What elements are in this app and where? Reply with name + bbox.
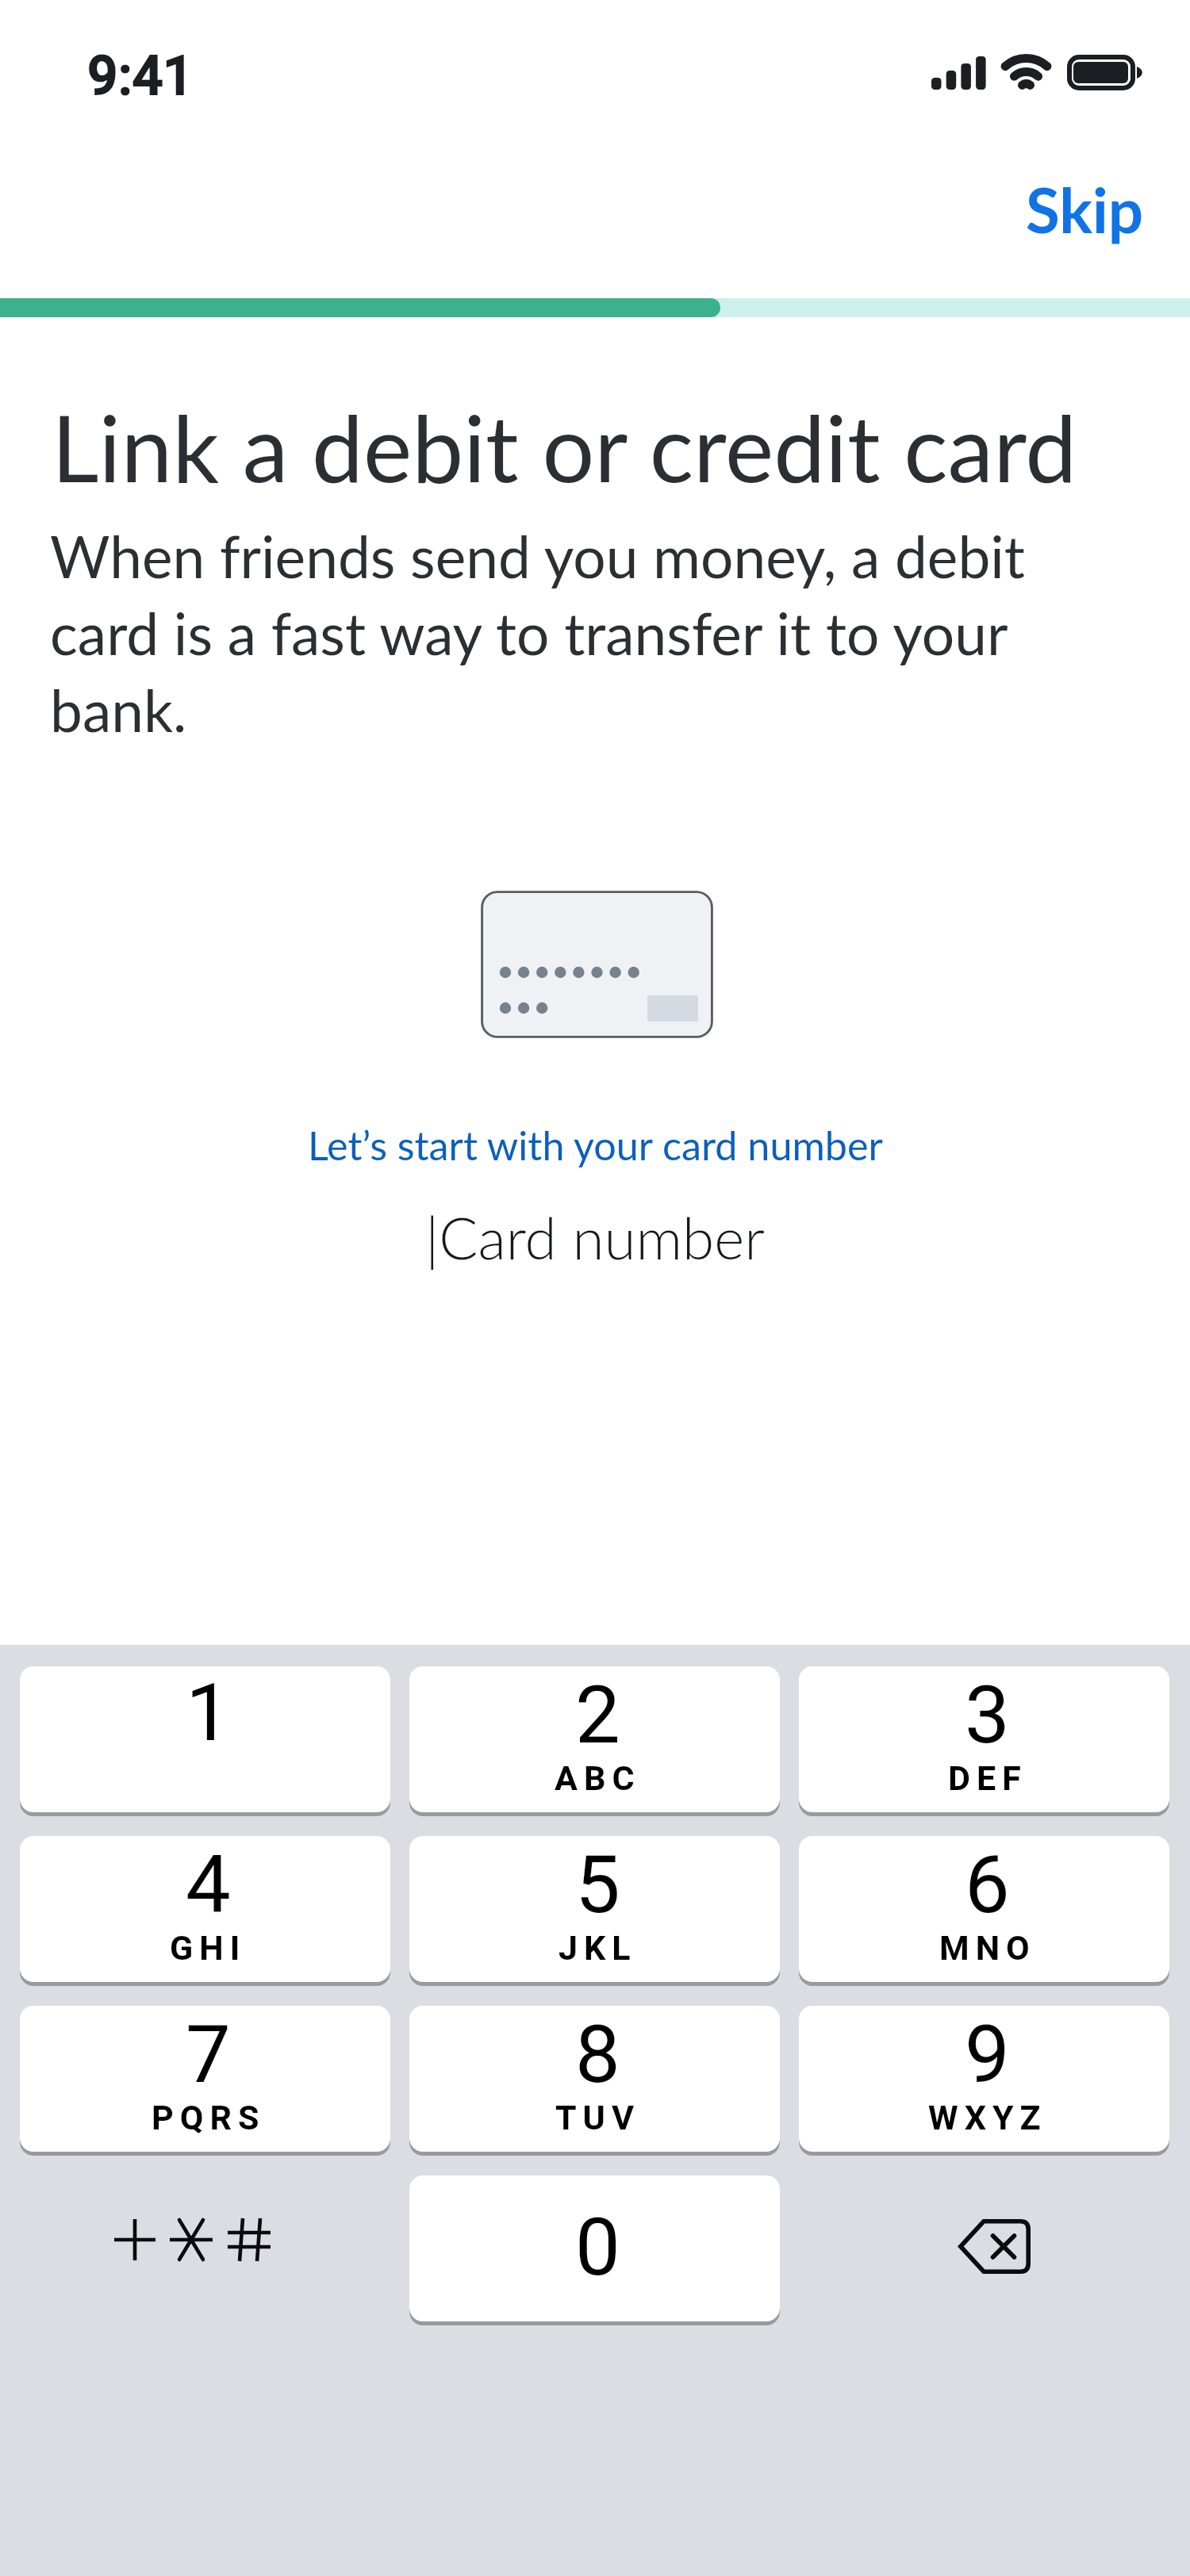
button[interactable]: Symbols plus star hash bbox=[20, 2175, 390, 2321]
staticText: Link a debit or credit card bbox=[52, 397, 1130, 500]
staticText: Let’s start with your card number bbox=[308, 1121, 883, 1168]
button[interactable]: 5 bbox=[409, 1836, 780, 1987]
staticText: TUV bbox=[555, 2098, 641, 2137]
staticText: DEF bbox=[948, 1758, 1027, 1798]
button[interactable]: 4 bbox=[20, 1836, 390, 1987]
staticText: 1 bbox=[186, 1666, 231, 1759]
button[interactable]: 9 bbox=[799, 2006, 1169, 2156]
staticText: 0 bbox=[575, 2200, 620, 2294]
button[interactable]: Backspace bbox=[799, 2175, 1169, 2321]
button[interactable]: 2 bbox=[409, 1666, 780, 1817]
staticText: MNO bbox=[939, 1928, 1036, 1968]
staticText: 9 bbox=[965, 2007, 1010, 2101]
staticText: WXYZ bbox=[928, 2098, 1047, 2137]
staticText: Skip bbox=[1026, 172, 1144, 247]
staticText: 2 bbox=[575, 1668, 620, 1761]
staticText: 6 bbox=[965, 1838, 1010, 1931]
staticText: ABC bbox=[555, 1758, 641, 1798]
button[interactable]: 7 bbox=[20, 2006, 390, 2156]
staticText: GHI bbox=[170, 1928, 247, 1968]
button[interactable]: 8 bbox=[409, 2006, 780, 2156]
staticText: 4 bbox=[186, 1838, 231, 1931]
staticText: PQRS bbox=[152, 2098, 266, 2137]
button[interactable]: |Card number bbox=[0, 1190, 1190, 1277]
staticText: |Card number bbox=[425, 1202, 765, 1271]
staticText: 9:41 bbox=[87, 44, 194, 108]
button[interactable]: 6 bbox=[799, 1836, 1169, 1987]
staticText: 5 bbox=[575, 1838, 620, 1931]
staticText: 8 bbox=[575, 2007, 620, 2101]
staticText: When friends send you money, a debit car… bbox=[50, 516, 1043, 746]
staticText: JKL bbox=[559, 1928, 637, 1968]
button[interactable]: Skip bbox=[1008, 153, 1161, 266]
staticText: 7 bbox=[186, 2007, 231, 2101]
button[interactable]: 0 bbox=[409, 2175, 780, 2326]
button[interactable]: 1 bbox=[20, 1666, 390, 1817]
staticText: 3 bbox=[965, 1668, 1010, 1761]
button[interactable]: 3 bbox=[799, 1666, 1169, 1817]
